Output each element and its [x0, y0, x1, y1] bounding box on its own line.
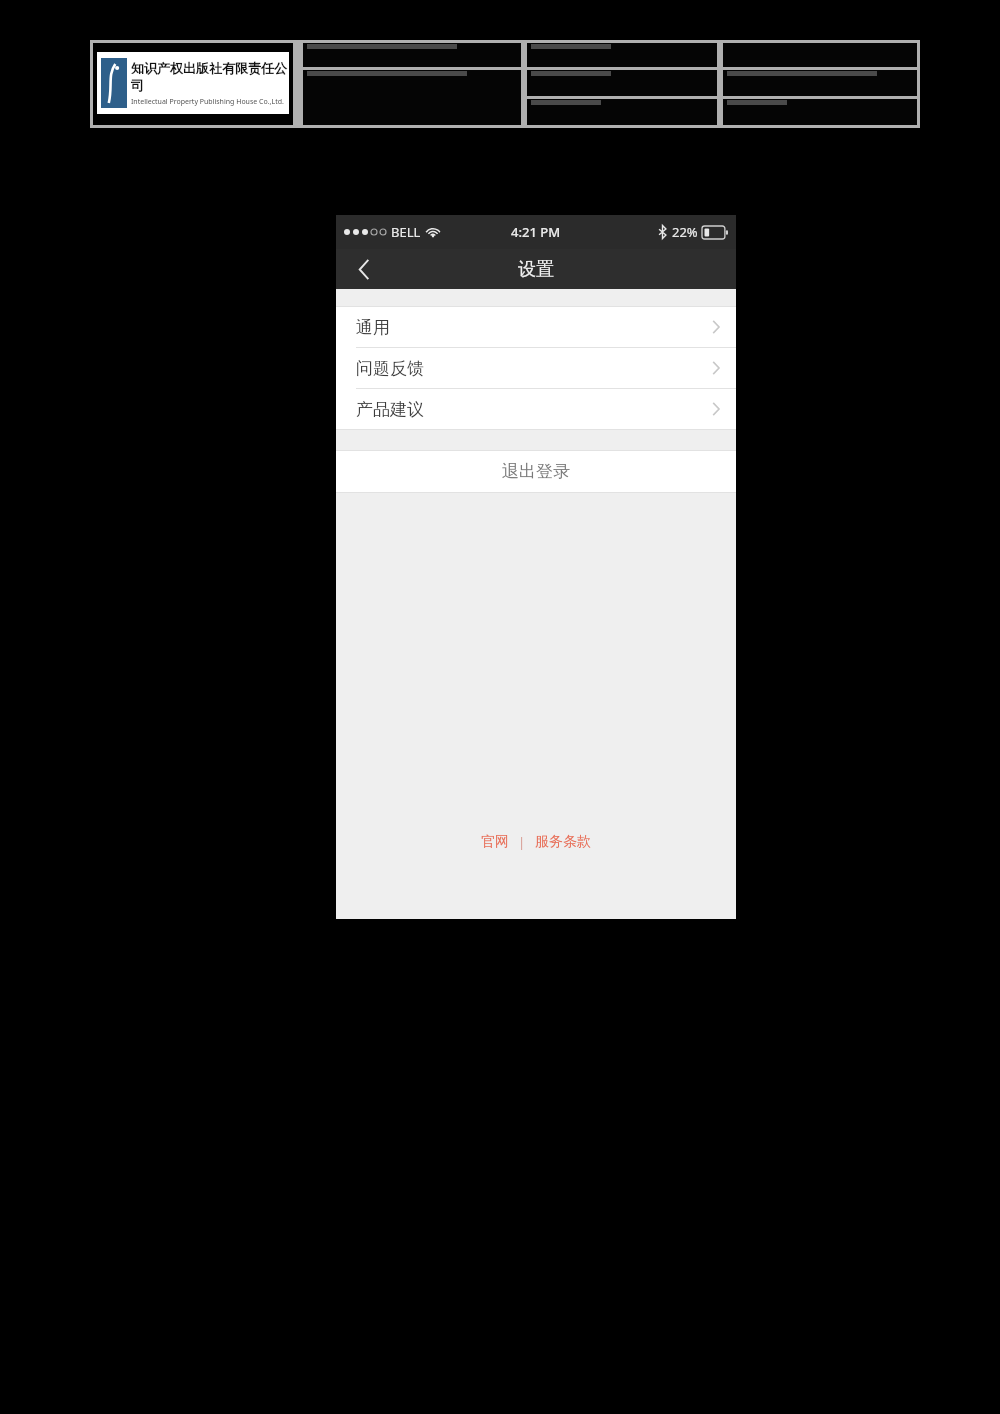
staticText: 退出登录 — [502, 461, 570, 482]
button[interactable]: 退出登录 — [336, 451, 736, 492]
staticText: 4:21 PM — [511, 223, 561, 241]
staticText: Intellectual Property Publishing House C… — [131, 97, 284, 107]
staticText: 官网 — [481, 833, 509, 851]
button[interactable]: 通用 — [336, 307, 736, 347]
button[interactable]: Back — [336, 249, 392, 289]
button[interactable]: 服务条款 — [533, 831, 593, 853]
staticText: 通用 — [356, 317, 390, 338]
staticText: 设置 — [518, 258, 554, 281]
button[interactable]: 官网 — [479, 831, 511, 853]
button[interactable]: 问题反馈 — [336, 348, 736, 388]
staticText: 产品建议 — [356, 399, 424, 420]
staticText: BELL — [391, 223, 421, 241]
staticText: | — [518, 833, 526, 851]
button[interactable]: 产品建议 — [336, 389, 736, 429]
staticText: 知识产权出版社有限责任公司 — [131, 60, 289, 94]
staticText: 22% — [672, 223, 698, 241]
staticText: 服务条款 — [535, 833, 591, 851]
staticText: 问题反馈 — [356, 358, 424, 379]
